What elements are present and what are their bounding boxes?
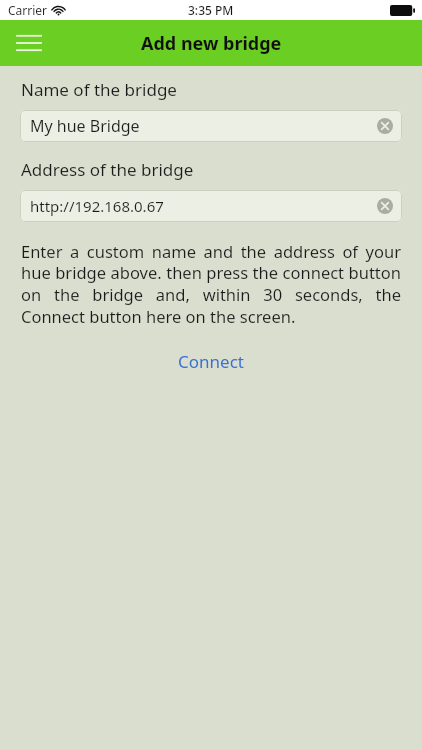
staticText: http://192.168.0.67	[30, 196, 164, 216]
staticText: Address of the bridge	[21, 158, 194, 181]
button[interactable]: Connect	[162, 346, 260, 377]
staticText: Enter a custom name and the address of y…	[21, 240, 401, 328]
staticText: My hue Bridge	[30, 115, 140, 137]
staticText: 3:35 PM	[188, 2, 234, 18]
staticText: Name of the bridge	[21, 78, 177, 101]
staticText: Add new bridge	[141, 31, 282, 56]
staticText: Connect	[178, 350, 244, 373]
button[interactable]: Clear text	[376, 117, 394, 135]
staticText: Carrier	[8, 2, 48, 18]
button[interactable]: Clear text	[376, 197, 394, 215]
button[interactable]: My hue Bridge	[20, 110, 402, 142]
button[interactable]: http://192.168.0.67	[20, 190, 402, 222]
button[interactable]: Menu	[12, 26, 46, 60]
